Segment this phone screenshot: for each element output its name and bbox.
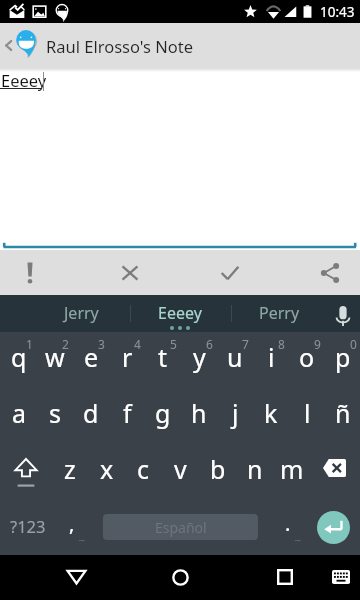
button[interactable]: Share xyxy=(308,250,352,295)
staticText: 8 xyxy=(278,336,285,352)
button[interactable]: d xyxy=(72,388,108,444)
button[interactable]: Home xyxy=(157,555,203,599)
button[interactable]: g xyxy=(144,388,180,444)
button[interactable]: l xyxy=(288,388,324,444)
button[interactable]: Enter xyxy=(306,500,360,555)
staticText: d xyxy=(83,396,99,430)
button[interactable]: Back xyxy=(53,555,99,599)
button[interactable]: ñ xyxy=(324,388,360,444)
staticText: Español xyxy=(155,518,207,537)
button[interactable]: 2 xyxy=(36,332,72,388)
staticText: 7 xyxy=(242,336,249,352)
button[interactable]: Back xyxy=(0,23,16,68)
button[interactable]: Perry xyxy=(230,295,328,332)
button[interactable]: k xyxy=(252,388,288,444)
staticText: ?123 xyxy=(10,515,46,537)
button[interactable]: Period xyxy=(270,500,306,555)
staticText: . xyxy=(285,510,291,537)
staticText: i xyxy=(268,340,275,374)
staticText: 1 xyxy=(26,336,33,352)
staticText: y xyxy=(193,340,206,374)
button[interactable]: 3 xyxy=(72,332,108,388)
button[interactable]: 5 xyxy=(144,332,180,388)
staticText: a xyxy=(12,396,27,430)
button[interactable]: Español xyxy=(103,514,258,540)
staticText: Eeeey xyxy=(1,69,47,91)
button[interactable]: c xyxy=(124,444,161,500)
button[interactable]: 7 xyxy=(216,332,252,388)
button[interactable]: Save xyxy=(208,250,252,295)
staticText: 6 xyxy=(206,336,213,352)
staticText: ñ xyxy=(335,396,351,430)
staticText: n xyxy=(247,452,263,486)
staticText: k xyxy=(264,396,278,430)
button[interactable]: Backspace xyxy=(309,444,360,500)
staticText: , xyxy=(69,510,75,537)
button[interactable]: Jerry xyxy=(32,295,130,332)
button[interactable]: j xyxy=(216,388,252,444)
staticText: l xyxy=(304,396,311,430)
staticText: j xyxy=(232,396,239,430)
staticText: s xyxy=(49,396,61,430)
staticText: f xyxy=(123,396,132,430)
button[interactable]: Comma xyxy=(54,500,90,555)
staticText: Eeeey xyxy=(158,302,202,324)
button[interactable]: b xyxy=(198,444,235,500)
staticText: w xyxy=(45,340,65,374)
button[interactable]: h xyxy=(180,388,216,444)
staticText: ••• xyxy=(295,538,301,545)
staticText: 9 xyxy=(314,336,321,352)
button[interactable]: Discard xyxy=(108,250,152,295)
button[interactable]: ?123 xyxy=(2,500,54,555)
button[interactable]: 0 xyxy=(324,332,360,388)
staticText: ••• xyxy=(79,538,85,545)
button[interactable]: z xyxy=(51,444,87,500)
button[interactable]: Warning xyxy=(8,250,52,295)
button[interactable]: 1 xyxy=(0,332,36,388)
staticText: u xyxy=(227,340,243,374)
staticText: o xyxy=(299,340,315,374)
staticText: q xyxy=(11,340,27,374)
button[interactable]: 9 xyxy=(288,332,324,388)
staticText: v xyxy=(174,452,187,486)
staticText: b xyxy=(210,452,226,486)
button[interactable]: m xyxy=(272,444,309,500)
staticText: m xyxy=(280,452,304,486)
button[interactable]: x xyxy=(87,444,124,500)
staticText: Jerry xyxy=(64,302,99,324)
staticText: z xyxy=(64,452,76,486)
staticText: c xyxy=(137,452,150,486)
staticText: 4 xyxy=(134,336,141,352)
button[interactable]: n xyxy=(235,444,272,500)
staticText: g xyxy=(155,396,171,430)
staticText: x xyxy=(100,452,114,486)
button[interactable]: 8 xyxy=(252,332,288,388)
button[interactable]: a xyxy=(0,388,36,444)
staticText: e xyxy=(84,340,99,374)
staticText: 3 xyxy=(98,336,105,352)
button[interactable]: 6 xyxy=(180,332,216,388)
staticText: h xyxy=(191,396,207,430)
button[interactable]: Recents xyxy=(262,555,308,599)
button[interactable]: s xyxy=(36,388,72,444)
staticText: 2 xyxy=(62,336,69,352)
staticText: Raul Elrosso's Note xyxy=(46,35,193,57)
staticText: t xyxy=(158,340,168,374)
staticText: 0 xyxy=(350,336,357,352)
button[interactable]: Eeeey xyxy=(131,295,229,332)
button[interactable]: Switch keyboard xyxy=(318,555,360,599)
button[interactable]: Shift xyxy=(0,444,51,500)
staticText: p xyxy=(335,340,351,374)
staticText: 10:43 xyxy=(320,3,355,21)
button[interactable]: f xyxy=(108,388,144,444)
staticText: Perry xyxy=(259,302,300,324)
staticText: r xyxy=(122,340,133,374)
staticText: 5 xyxy=(170,336,177,352)
button[interactable]: v xyxy=(161,444,198,500)
button[interactable]: Voice input xyxy=(326,295,360,332)
button[interactable]: 4 xyxy=(108,332,144,388)
